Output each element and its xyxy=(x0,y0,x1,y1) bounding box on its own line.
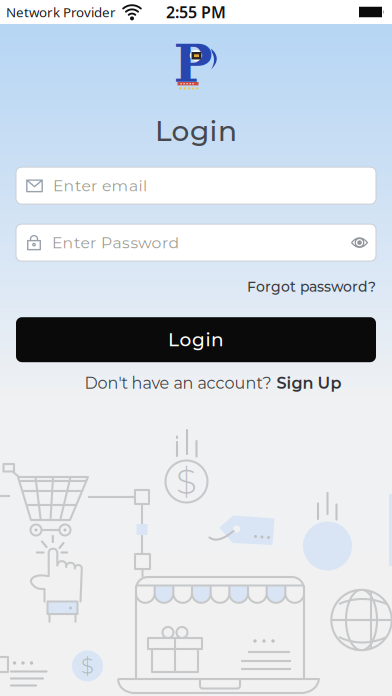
textField[interactable]: Enter email xyxy=(53,176,376,195)
staticText: Login xyxy=(168,328,224,351)
staticText: $ xyxy=(176,461,197,502)
button[interactable]: Sign Up xyxy=(276,373,341,393)
staticText: P xyxy=(173,33,212,94)
staticText: Sign Up xyxy=(276,373,341,393)
button[interactable]: Forgot password? xyxy=(247,278,376,295)
staticText: Login xyxy=(155,114,237,148)
staticText: Enter Password xyxy=(52,233,179,252)
staticText: Enter email xyxy=(53,176,147,195)
secureTextField[interactable]: Enter Password xyxy=(52,233,340,252)
staticText: 2:55 PM xyxy=(166,1,226,23)
staticText: Don't have an account? xyxy=(84,373,271,393)
staticText: $ xyxy=(81,653,94,679)
button[interactable]: Login xyxy=(16,317,376,362)
staticText: Forgot password? xyxy=(247,278,376,295)
button[interactable]: Show password xyxy=(351,237,376,248)
staticText: Network Provider xyxy=(6,3,116,21)
